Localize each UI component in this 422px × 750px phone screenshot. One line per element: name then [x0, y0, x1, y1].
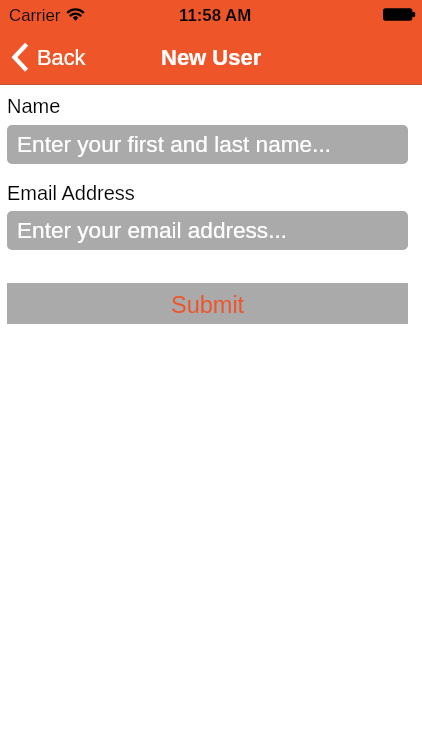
other: Back [12, 42, 29, 71]
staticText: Back [37, 45, 86, 69]
staticText: Email Address [7, 182, 135, 204]
staticText: Enter your email address... [17, 218, 287, 243]
button[interactable]: Enter your first and last name... [7, 125, 408, 164]
staticText: Enter your first and last name... [17, 132, 331, 157]
staticText: New User [161, 45, 262, 70]
button[interactable]: Back [0, 34, 100, 79]
other: Battery [383, 8, 416, 21]
staticText: 11:58 AM [179, 6, 252, 25]
button[interactable]: Enter your email address... [7, 211, 408, 250]
button[interactable]: Submit [7, 283, 408, 324]
other: Wi-Fi [67, 9, 84, 21]
staticText: Name [7, 95, 61, 117]
staticText: Submit [171, 292, 245, 318]
staticText: Carrier [9, 6, 61, 25]
